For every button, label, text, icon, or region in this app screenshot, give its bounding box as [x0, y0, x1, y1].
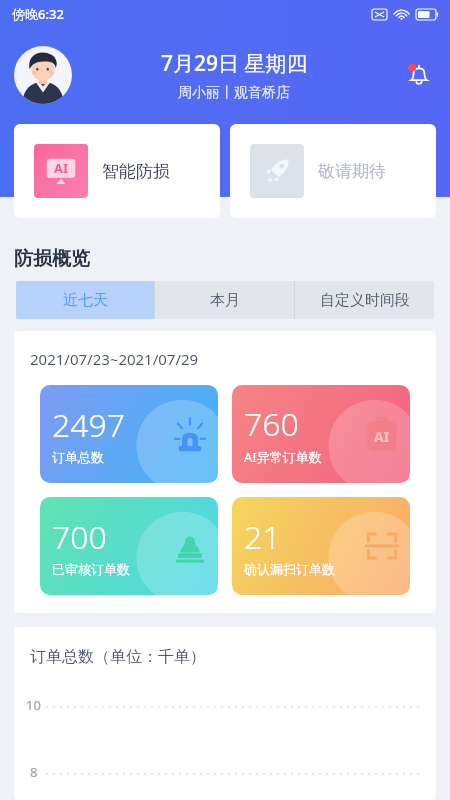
- button[interactable]: 自定义时间段: [295, 281, 434, 319]
- staticText: 2021/07/23~2021/07/29: [30, 349, 199, 369]
- staticText: 敬请期待: [318, 161, 386, 182]
- staticText: 周小丽丨观音桥店: [178, 84, 290, 102]
- staticText: 已审核订单数: [52, 561, 130, 577]
- staticText: 700: [52, 515, 107, 559]
- staticText: 防损概览: [14, 247, 90, 271]
- staticText: 8: [30, 763, 38, 781]
- button[interactable]: 2497: [40, 385, 218, 483]
- button[interactable]: 21: [232, 497, 410, 595]
- staticText: AI: [374, 427, 390, 446]
- button[interactable]: 700: [40, 497, 218, 595]
- staticText: 智能防损: [102, 161, 170, 182]
- staticText: AI异常订单数: [244, 448, 322, 466]
- staticText: 2497: [52, 403, 126, 447]
- staticText: 订单总数（单位：千单）: [30, 647, 206, 667]
- button[interactable]: AI: [14, 124, 220, 218]
- staticText: 7月29日 星期四: [161, 49, 308, 78]
- button[interactable]: 敬请期待: [230, 124, 436, 218]
- staticText: 确认漏扫订单数: [244, 561, 335, 577]
- staticText: 近七天: [63, 291, 108, 310]
- staticText: 自定义时间段: [320, 291, 410, 310]
- staticText: 21: [244, 515, 281, 559]
- staticText: 傍晚6:32: [12, 5, 64, 23]
- staticText: 本月: [210, 291, 240, 310]
- staticText: 10: [26, 696, 41, 714]
- button[interactable]: 近七天: [16, 281, 154, 319]
- button[interactable]: Notifications: [396, 52, 442, 98]
- button[interactable]: Profile: [14, 46, 72, 104]
- staticText: 760: [244, 402, 299, 446]
- button[interactable]: 本月: [155, 281, 294, 319]
- staticText: AI: [54, 159, 69, 177]
- button[interactable]: AI: [232, 385, 410, 483]
- staticText: 订单总数: [52, 449, 104, 465]
